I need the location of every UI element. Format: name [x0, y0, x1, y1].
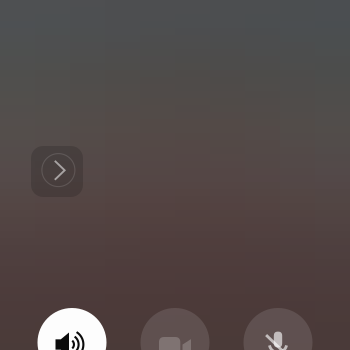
- button[interactable]: Turn camera on: [140, 308, 209, 350]
- button[interactable]: Expand call: [31, 146, 83, 197]
- button[interactable]: Audio output: [37, 308, 106, 350]
- button[interactable]: Unmute microphone: [243, 308, 312, 350]
